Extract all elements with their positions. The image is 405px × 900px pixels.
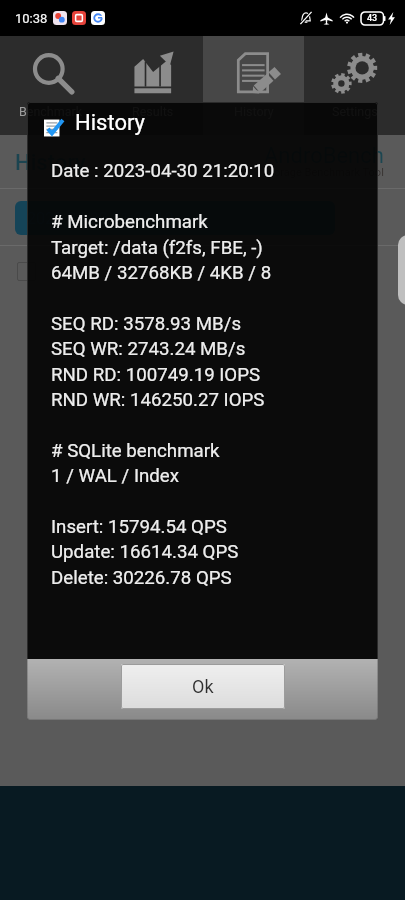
- staticText: # SQLite benchmark: [51, 440, 220, 462]
- staticText: 64MB / 32768KB / 4KB / 8: [51, 262, 272, 284]
- staticText: Target: /data (f2fs, FBE, -): [51, 237, 263, 259]
- staticText: SEQ WR: 2743.24 MB/s: [51, 338, 246, 360]
- staticText: History: [75, 110, 145, 136]
- staticText: RND RD: 100749.19 IOPS: [51, 364, 261, 386]
- staticText: SEQ RD: 3578.93 MB/s: [51, 313, 242, 335]
- staticText: Settings: [332, 104, 378, 119]
- staticText: # Microbenchmark: [51, 211, 208, 233]
- staticText: History: [15, 150, 86, 176]
- staticText: Benchmark: [19, 104, 83, 119]
- staticText: Date : 2023-04-30 21:20:10: [51, 160, 275, 182]
- button[interactable]: Results: [102, 36, 203, 135]
- staticText: Results: [132, 104, 174, 119]
- staticText: Storage Benchmark Tool: [264, 166, 384, 179]
- staticText: 2023-04-30 21:20:10: [27, 209, 174, 228]
- staticText: 43: [367, 13, 378, 24]
- button[interactable]: Select: [17, 262, 36, 281]
- staticText: Delete: 30226.78 QPS: [51, 567, 232, 589]
- button[interactable]: Benchmark: [0, 36, 102, 135]
- button[interactable]: 2023-04-30 21:20:10: [15, 201, 335, 235]
- staticText: Ok: [192, 676, 214, 697]
- button[interactable]: Ok: [121, 664, 285, 709]
- button[interactable]: History: [203, 36, 304, 135]
- staticText: Insert: 15794.54 QPS: [51, 516, 227, 538]
- staticText: 1 / WAL / Index: [51, 465, 180, 487]
- staticText: Update: 16614.34 QPS: [51, 541, 239, 563]
- staticText: RND WR: 146250.27 IOPS: [51, 389, 265, 411]
- button[interactable]: Settings: [304, 36, 405, 135]
- staticText: AndroBench: [264, 143, 384, 169]
- staticText: 10:38: [15, 11, 48, 26]
